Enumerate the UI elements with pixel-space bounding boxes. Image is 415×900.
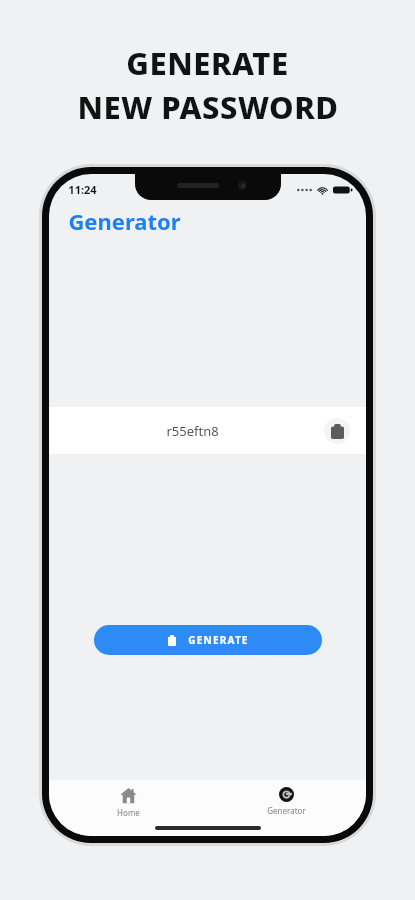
button[interactable]: Copy password	[324, 418, 350, 444]
staticText: Home	[117, 807, 140, 818]
button[interactable]: GENERATE	[94, 625, 322, 655]
staticText: Generator	[267, 805, 306, 816]
staticText: r55eftn8	[166, 422, 219, 440]
button[interactable]: Home	[49, 780, 207, 818]
button[interactable]: r55eftn8	[49, 407, 366, 454]
staticText: Generator	[68, 206, 181, 236]
staticText: NEW PASSWORD	[77, 86, 339, 128]
staticText: GENERATE	[188, 633, 249, 647]
staticText: 11:24	[68, 182, 97, 197]
button[interactable]: Generator	[207, 780, 366, 816]
staticText: GENERATE	[126, 42, 289, 84]
